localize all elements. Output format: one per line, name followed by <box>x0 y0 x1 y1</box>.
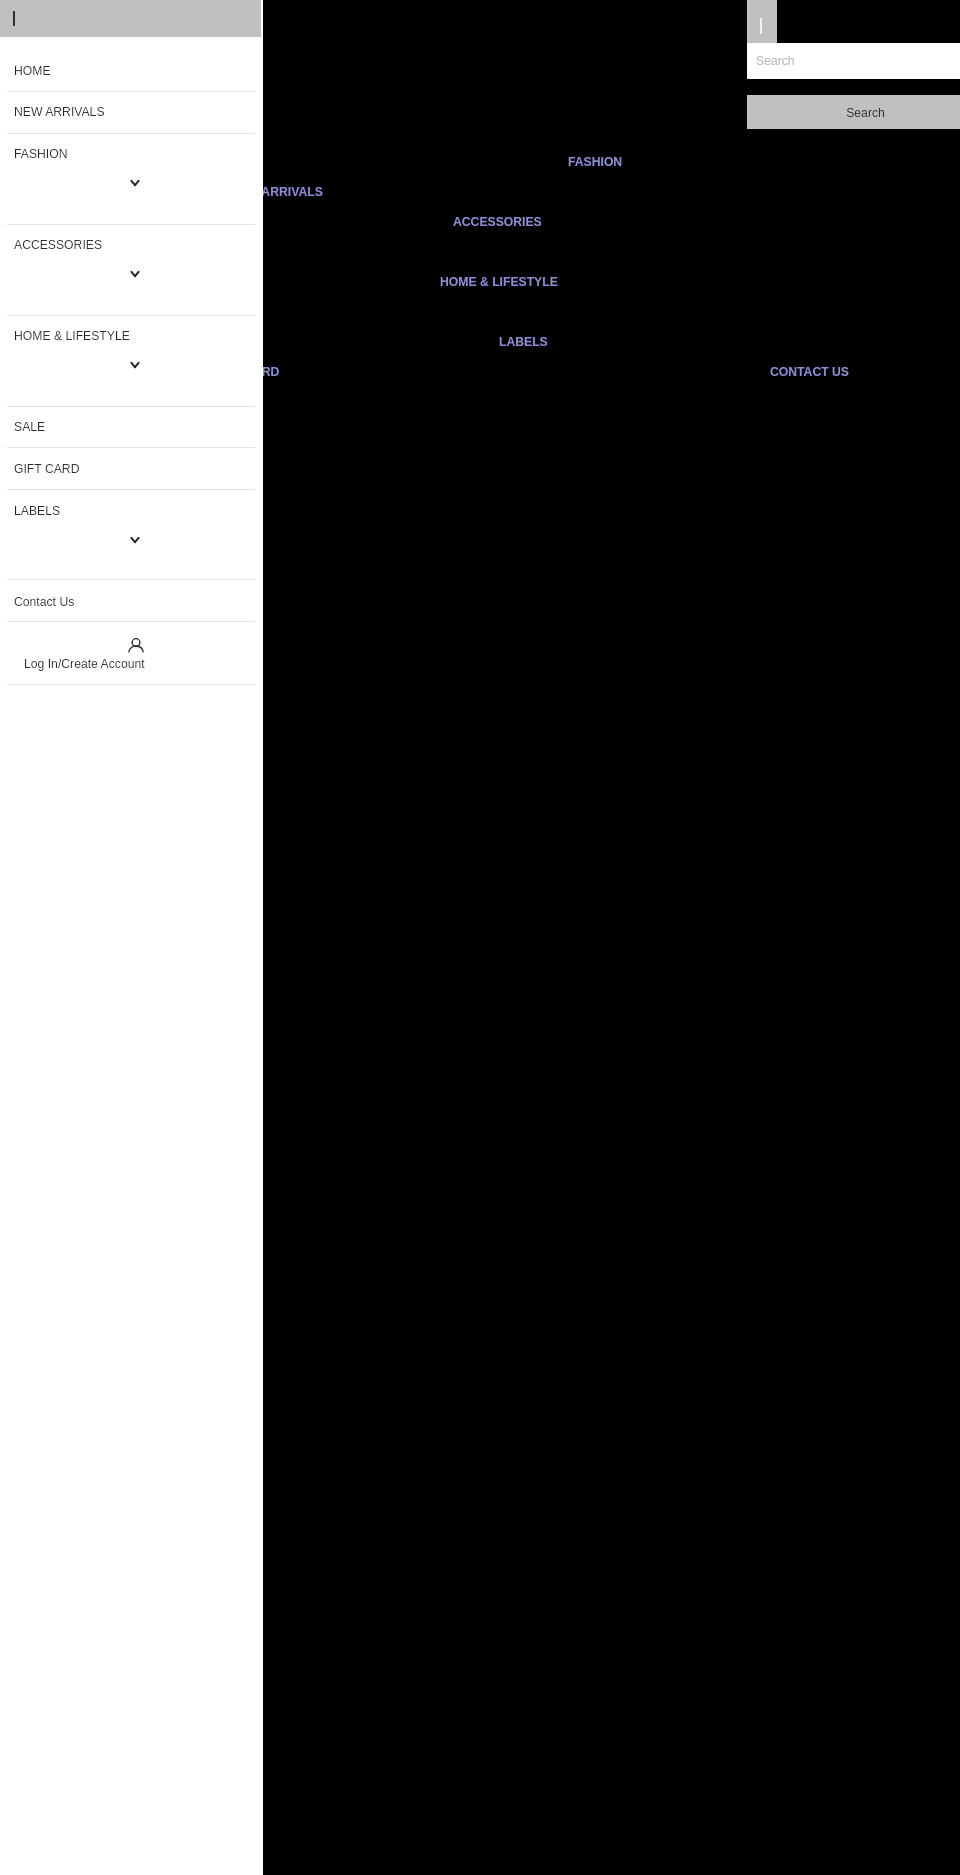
staticText: HOME & LIFESTYLE <box>14 329 130 343</box>
button[interactable]: HOME & LIFESTYLE <box>440 275 558 289</box>
button[interactable]: NEW ARRIVALS <box>230 185 323 199</box>
button[interactable]: GIFT CARD <box>213 365 280 379</box>
button[interactable]: Expand HOME & LIFESTYLE <box>122 354 148 376</box>
staticText: CONTACT US <box>770 365 849 379</box>
staticText: NEW ARRIVALS <box>230 185 323 199</box>
button[interactable]: LABELS <box>499 335 548 349</box>
button[interactable]: ACCESSORIES <box>453 215 542 229</box>
button[interactable]: CONTACT US <box>770 365 849 379</box>
staticText: GIFT CARD <box>14 462 80 476</box>
button[interactable]: HOME <box>0 50 263 91</box>
staticText: LABELS <box>499 335 548 349</box>
staticText: Contact Us <box>14 595 75 609</box>
staticText: GIFT CARD <box>213 365 280 379</box>
staticText: Log In/Create Account <box>24 657 145 671</box>
button[interactable]: Search field <box>747 43 960 79</box>
button[interactable]: Expand LABELS <box>122 529 148 551</box>
staticText: FASHION <box>568 155 623 169</box>
button[interactable]: HOME & LIFESTYLE <box>0 316 263 406</box>
button[interactable]: GIFT CARD <box>0 448 263 489</box>
staticText: ACCESSORIES <box>453 215 542 229</box>
staticText: LABELS <box>14 504 61 518</box>
staticText: Search <box>846 106 885 120</box>
button[interactable]: ACCESSORIES <box>0 225 263 315</box>
staticText: ACCESSORIES <box>14 238 103 252</box>
button[interactable]: Log In/Create Account <box>0 622 263 684</box>
button[interactable]: LABELS <box>0 490 263 579</box>
button[interactable]: Search <box>747 0 777 44</box>
button[interactable]: FASHION <box>568 155 623 169</box>
staticText: NEW ARRIVALS <box>14 105 105 119</box>
button[interactable]: Expand ACCESSORIES <box>122 263 148 285</box>
staticText: FASHION <box>14 147 68 161</box>
button[interactable]: Contact Us <box>0 580 263 621</box>
staticText: HOME & LIFESTYLE <box>440 275 558 289</box>
button[interactable]: Menu search field <box>0 0 261 37</box>
button[interactable]: SALE <box>0 407 263 447</box>
button[interactable]: NEW ARRIVALS <box>0 92 263 133</box>
staticText: Search <box>756 54 795 68</box>
button[interactable]: Search <box>747 95 960 129</box>
staticText: HOME <box>14 64 51 78</box>
button[interactable]: Expand FASHION <box>122 172 148 194</box>
staticText: SALE <box>14 420 46 434</box>
button[interactable]: FASHION <box>0 134 263 224</box>
